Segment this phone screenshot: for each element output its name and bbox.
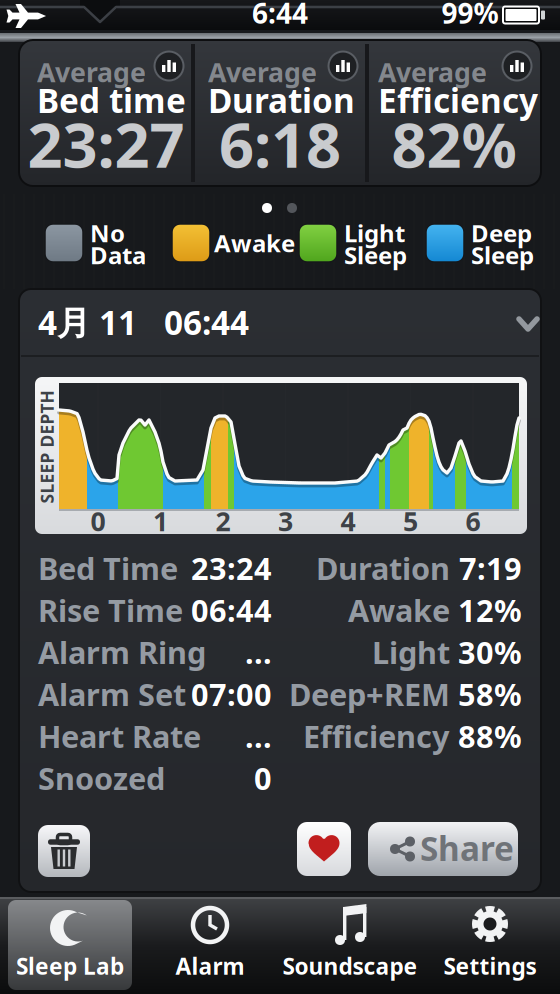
staticText: Rise Time [38, 590, 183, 630]
staticText: ... [245, 632, 272, 672]
staticText: Average [208, 54, 317, 90]
staticText: Soundscape [282, 951, 417, 981]
staticText: Bed Time [38, 548, 178, 588]
staticText: Alarm Set [38, 674, 186, 714]
button[interactable]: Alarm [140, 898, 280, 994]
staticText: Deep+REM [289, 674, 450, 714]
staticText: 23:24 [191, 548, 272, 588]
staticText: 3 [278, 503, 293, 539]
staticText: 99% [441, 0, 498, 32]
staticText: Alarm [175, 951, 244, 981]
staticText: No [90, 217, 125, 249]
staticText: ... [245, 716, 272, 756]
staticText: Duration [316, 548, 450, 588]
staticText: Sleep [471, 239, 534, 271]
staticText: Data [90, 239, 146, 271]
staticText: 1 [153, 503, 168, 539]
button[interactable]: Average [367, 40, 541, 186]
staticText: SLEEP DEPTH [0, 435, 103, 458]
staticText: 0 [254, 758, 272, 798]
staticText: Alarm Ring [38, 632, 206, 672]
button[interactable]: Favorite [297, 822, 351, 876]
staticText: Share [420, 826, 514, 870]
staticText: 30% [458, 632, 522, 672]
staticText: Light [372, 632, 450, 672]
staticText: Sleep [344, 239, 407, 271]
button[interactable]: Average [193, 40, 367, 186]
staticText: Efficiency [378, 78, 538, 122]
staticText: Heart Rate [38, 716, 201, 756]
staticText: Average [37, 54, 146, 90]
staticText: Bed time [37, 78, 186, 122]
staticText: Average [378, 54, 487, 90]
staticText: Awake [348, 590, 450, 630]
staticText: 58% [458, 674, 522, 714]
staticText: Awake [214, 227, 295, 259]
staticText: 6 [465, 503, 480, 539]
staticText: Sleep Lab [16, 951, 124, 981]
button[interactable]: Delete [38, 825, 90, 877]
staticText: 4 [340, 503, 355, 539]
button[interactable]: Average [19, 40, 193, 186]
staticText: 23:27 [27, 103, 184, 185]
staticText: Deep [471, 217, 532, 249]
button[interactable]: Settings [420, 898, 560, 994]
staticText: Duration [208, 78, 355, 122]
staticText: 12% [458, 590, 522, 630]
staticText: 07:00 [191, 674, 272, 714]
button[interactable]: Share [368, 822, 518, 876]
button[interactable]: Pull down clock [78, 0, 122, 26]
staticText: 06:44 [191, 590, 272, 630]
staticText: Settings [443, 951, 536, 981]
staticText: 2 [215, 503, 230, 539]
staticText: 88% [458, 716, 522, 756]
staticText: 7:19 [459, 548, 522, 588]
staticText: 0 [90, 503, 105, 539]
staticText: 6:18 [219, 103, 341, 185]
staticText: 82% [391, 103, 516, 185]
button[interactable]: 4月 11 06:44 [19, 289, 541, 355]
staticText: 6:44 [252, 0, 308, 32]
staticText: 5 [403, 503, 418, 539]
staticText: 4月 11 06:44 [38, 300, 249, 344]
button[interactable]: Sleep Lab [8, 900, 132, 990]
button[interactable]: Soundscape [280, 898, 420, 994]
staticText: Efficiency [303, 716, 450, 756]
staticText: Snoozed [38, 758, 165, 798]
staticText: Light [344, 217, 405, 249]
